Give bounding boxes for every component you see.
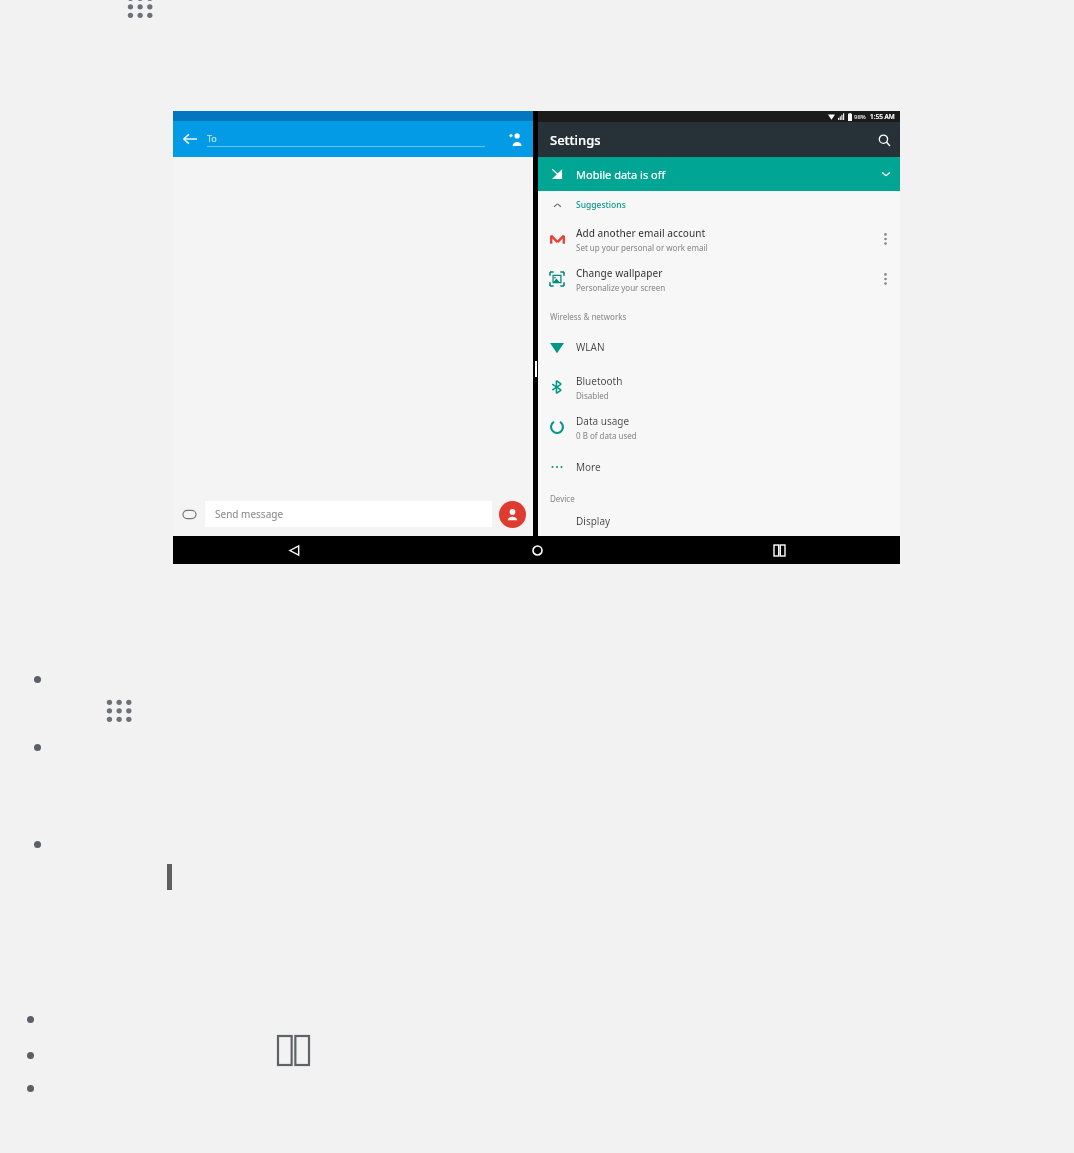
staticText: Display	[576, 514, 611, 528]
staticText: Suggestions	[576, 199, 626, 211]
staticText: Send message	[215, 507, 284, 521]
staticText: 1:55 AM	[870, 112, 895, 121]
staticText: Bluetooth	[576, 374, 623, 388]
staticText: Wireless & networks	[550, 311, 627, 322]
staticText: 98%	[854, 113, 866, 121]
staticText: Personalize your screen	[576, 282, 666, 293]
staticText: Add another email account	[576, 226, 706, 240]
button[interactable]: Send message	[205, 501, 492, 527]
button[interactable]: Mobile data is off	[538, 157, 900, 191]
staticText: More	[576, 460, 601, 474]
button[interactable]: Suggestions	[538, 191, 900, 219]
staticText: To	[207, 132, 217, 144]
button[interactable]: Bluetooth	[538, 367, 900, 407]
staticText: Mobile data is off	[576, 167, 666, 182]
staticText: Disabled	[576, 390, 609, 401]
staticText: 0 B of data used	[576, 430, 637, 441]
button[interactable]: Data usage	[538, 407, 900, 447]
button[interactable]: Send to contact	[499, 501, 526, 528]
button[interactable]: Display	[538, 509, 900, 523]
button[interactable]: Add another email account	[538, 219, 900, 259]
button[interactable]: WLAN	[538, 327, 900, 367]
staticText: Settings	[550, 131, 601, 149]
button[interactable]: More options	[870, 224, 900, 254]
button[interactable]: Back	[173, 122, 207, 156]
button[interactable]: Change wallpaper	[538, 259, 900, 299]
staticText: Change wallpaper	[576, 266, 663, 280]
button[interactable]: Attach	[173, 498, 205, 530]
button[interactable]: Recent apps	[658, 536, 900, 564]
staticText: Device	[550, 493, 575, 504]
button[interactable]: Add recipient	[499, 122, 533, 156]
staticText: Set up your personal or work email	[576, 242, 708, 253]
staticText: Data usage	[576, 414, 630, 428]
button[interactable]: More options	[870, 264, 900, 294]
staticText: WLAN	[576, 340, 605, 354]
button[interactable]: Search	[868, 124, 900, 156]
button[interactable]: More	[538, 447, 900, 487]
button[interactable]: Back	[173, 536, 416, 564]
button[interactable]: Home	[416, 536, 658, 564]
